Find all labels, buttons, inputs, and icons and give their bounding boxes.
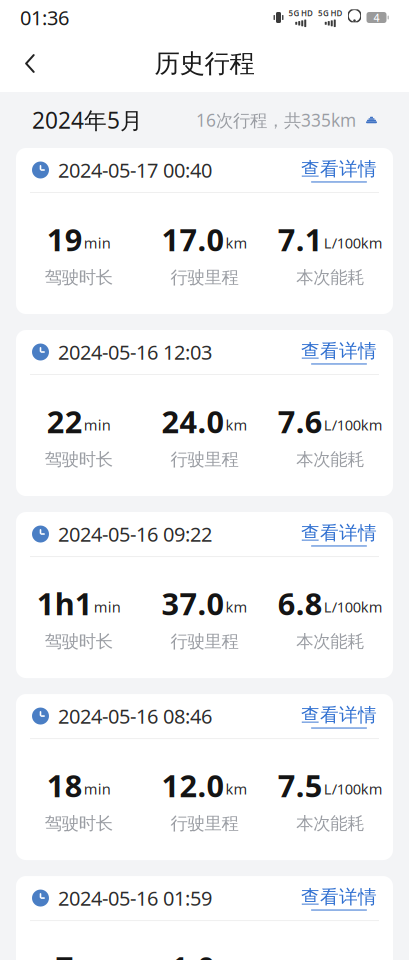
staticText: 本次能耗 xyxy=(296,813,364,834)
staticText: 查看详情 xyxy=(301,886,377,908)
staticText: min xyxy=(84,233,111,253)
staticText: 19 xyxy=(47,219,83,260)
staticText: 7.5 xyxy=(278,765,323,806)
button[interactable]: 查看详情 xyxy=(301,522,377,546)
staticText: km xyxy=(225,597,247,617)
staticText: km xyxy=(225,415,247,435)
staticText: L/100km xyxy=(324,597,383,617)
staticText: 1h1 xyxy=(37,583,93,624)
staticText: 01:36 xyxy=(20,4,69,31)
staticText: HD xyxy=(330,8,342,18)
staticText: 查看详情 xyxy=(301,157,377,180)
staticText: 驾驶时长 xyxy=(45,813,113,834)
staticText: 2024-05-17 00:40 xyxy=(58,157,212,183)
staticText: 6.8 xyxy=(278,583,323,624)
staticText: 7.1 xyxy=(278,219,323,260)
staticText: 2024年5月 xyxy=(32,105,143,135)
staticText: 12.0 xyxy=(161,765,224,806)
staticText: 2024-05-16 12:03 xyxy=(58,339,212,365)
staticText: min xyxy=(84,779,111,799)
staticText: min xyxy=(94,597,121,617)
staticText: 本次能耗 xyxy=(296,449,364,470)
staticText: 17.0 xyxy=(161,219,224,260)
staticText: 2024-05-16 09:22 xyxy=(58,521,212,547)
staticText: L/100km xyxy=(324,779,383,799)
button[interactable]: 查看详情 xyxy=(301,704,377,728)
staticText: 1.0 xyxy=(170,947,215,960)
staticText: 7 xyxy=(56,947,74,960)
staticText: 查看详情 xyxy=(301,522,377,544)
staticText: 本次能耗 xyxy=(296,631,364,652)
staticText: 24.0 xyxy=(161,401,224,442)
staticText: min xyxy=(84,415,111,435)
staticText: 查看详情 xyxy=(301,704,377,726)
staticText: 2024-05-16 08:46 xyxy=(58,703,212,729)
button[interactable]: 返回 xyxy=(8,41,52,85)
staticText: 37.0 xyxy=(161,583,224,624)
staticText: 5G xyxy=(288,8,299,18)
button[interactable]: 查看详情 xyxy=(301,340,377,364)
staticText: 行驶里程 xyxy=(170,449,238,470)
staticText: 行驶里程 xyxy=(170,813,238,834)
staticText: km xyxy=(225,779,247,799)
staticText: 5G xyxy=(318,8,329,18)
staticText: 本次能耗 xyxy=(296,267,364,288)
staticText: L/100km xyxy=(324,415,383,435)
staticText: 驾驶时长 xyxy=(45,449,113,470)
staticText: 查看详情 xyxy=(301,340,377,362)
staticText: 历史行程 xyxy=(154,48,254,79)
staticText: 18 xyxy=(47,765,83,806)
staticText: 行驶里程 xyxy=(170,267,238,288)
staticText: HD xyxy=(301,8,313,18)
button[interactable]: 查看详情 xyxy=(301,157,377,182)
staticText: 4 xyxy=(373,10,379,25)
staticText: 行驶里程 xyxy=(170,631,238,652)
staticText: km xyxy=(225,233,247,253)
staticText: 16次行程，共335km xyxy=(196,108,356,131)
staticText: 22 xyxy=(47,401,83,442)
button[interactable]: 查看详情 xyxy=(301,886,377,910)
staticText: 7.6 xyxy=(278,401,323,442)
staticText: 驾驶时长 xyxy=(45,631,113,652)
staticText: 驾驶时长 xyxy=(45,267,113,288)
button[interactable]: 16次行程，共335km xyxy=(196,108,377,131)
staticText: 2024-05-16 01:59 xyxy=(58,885,212,911)
staticText: L/100km xyxy=(324,233,383,253)
